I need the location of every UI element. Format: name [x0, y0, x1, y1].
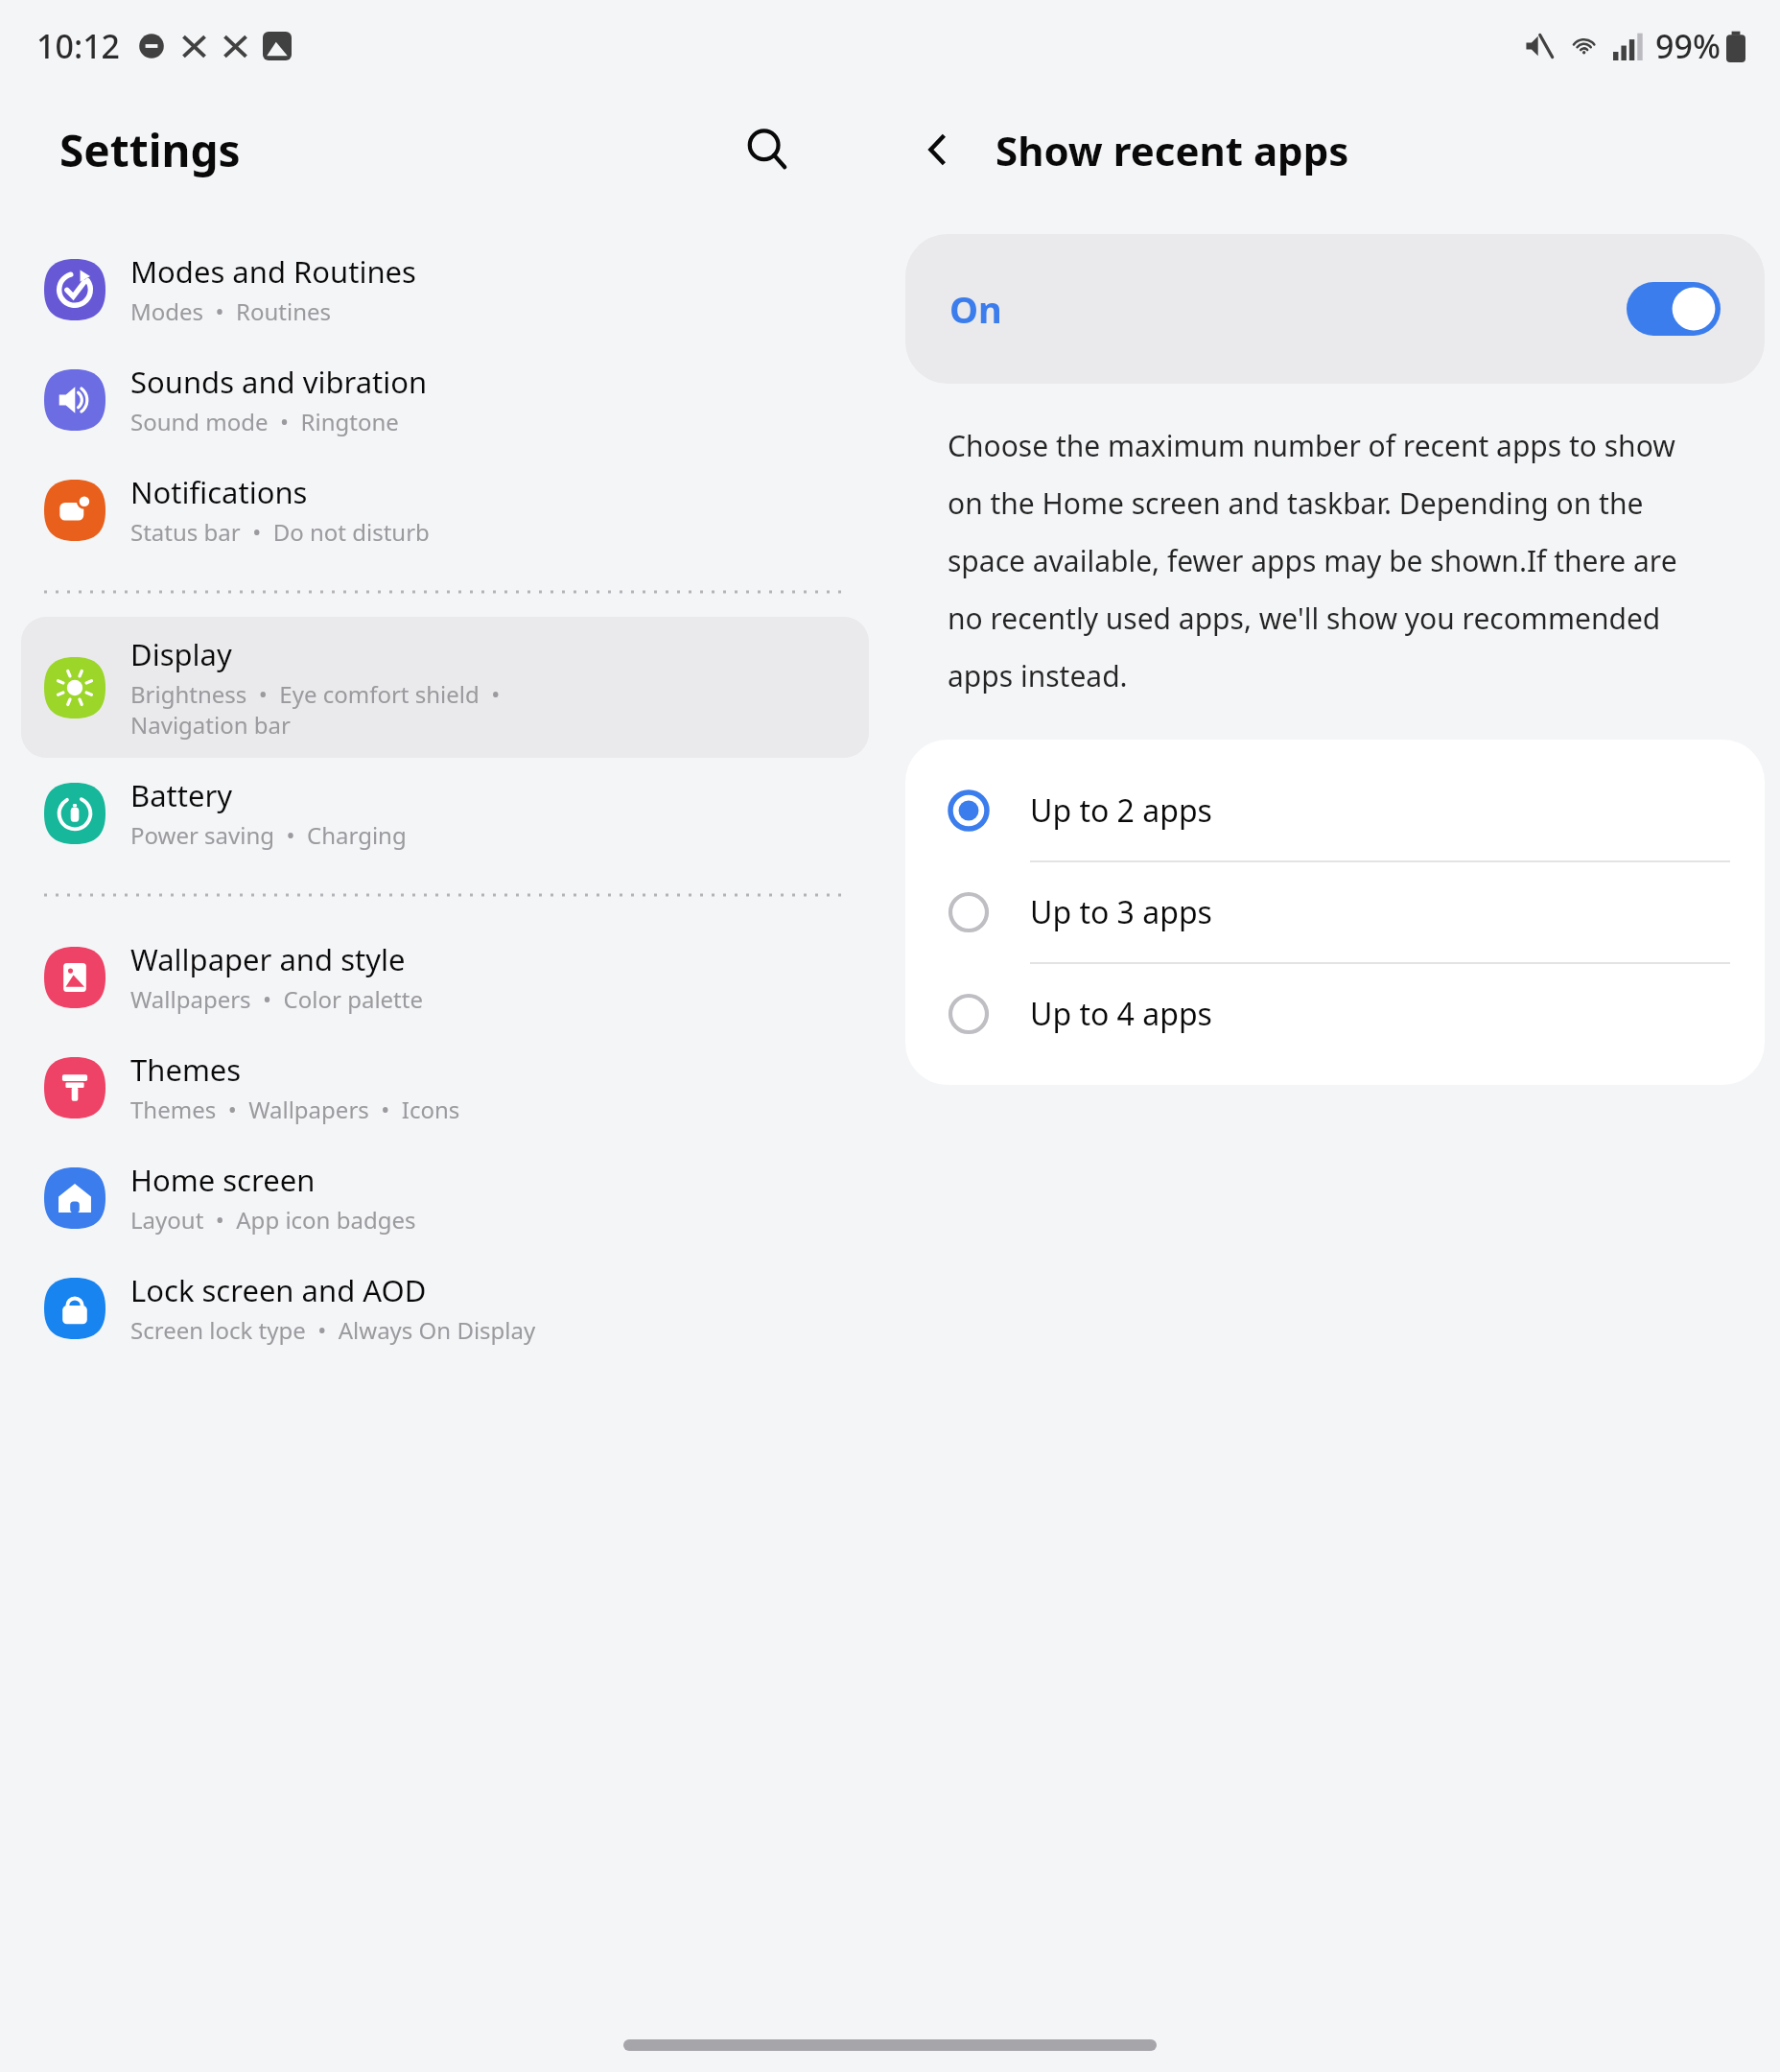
staticText: Themes	[130, 1049, 242, 1090]
staticText: Sound mode • Ringtone	[130, 406, 399, 437]
button[interactable]: Sounds and vibration	[21, 344, 869, 455]
staticText: Themes • Wallpapers • Icons	[130, 1094, 460, 1125]
button[interactable]: Back	[903, 115, 972, 184]
staticText: Layout • App icon badges	[130, 1204, 416, 1236]
staticText: Wallpaper and style	[130, 939, 406, 979]
button[interactable]: On	[905, 234, 1765, 384]
staticText: Show recent apps	[995, 123, 1349, 177]
button[interactable]: Battery	[21, 758, 869, 868]
button[interactable]: Display	[21, 617, 869, 758]
staticText: Status bar • Do not disturb	[130, 516, 430, 548]
staticText: Modes • Routines	[130, 295, 332, 327]
staticText: Choose the maximum number of recent apps…	[948, 426, 1705, 695]
staticText: Sounds and vibration	[130, 362, 428, 402]
button[interactable]: Themes	[21, 1032, 869, 1142]
button[interactable]: Up to 2 apps	[905, 761, 1765, 860]
button[interactable]: Up to 4 apps	[905, 964, 1765, 1064]
staticText: On	[949, 284, 1002, 334]
button[interactable]: Modes and Routines	[21, 234, 869, 344]
staticText: Wallpapers • Color palette	[130, 983, 423, 1015]
staticText: Screen lock type • Always On Display	[130, 1314, 536, 1346]
staticText: 10:12	[36, 24, 121, 68]
button[interactable]: Search	[733, 115, 802, 184]
staticText: Lock screen and AOD	[130, 1270, 427, 1310]
button[interactable]: Lock screen and AOD	[21, 1253, 869, 1363]
staticText: Home screen	[130, 1160, 316, 1200]
staticText: Modes and Routines	[130, 251, 416, 292]
staticText: Brightness • Eye comfort shield • Naviga…	[130, 678, 501, 741]
staticText: Up to 2 apps	[1030, 789, 1212, 832]
staticText: Notifications	[130, 472, 308, 512]
staticText: Power saving • Charging	[130, 819, 407, 851]
staticText: 99%	[1655, 24, 1721, 68]
button[interactable]: Home screen	[21, 1142, 869, 1253]
staticText: Settings	[59, 120, 241, 180]
button[interactable]: Up to 3 apps	[905, 862, 1765, 962]
staticText: Up to 4 apps	[1030, 993, 1212, 1035]
button[interactable]: Notifications	[21, 455, 869, 565]
staticText: Up to 3 apps	[1030, 891, 1212, 933]
staticText: Display	[130, 634, 232, 674]
button[interactable]: Wallpaper and style	[21, 922, 869, 1032]
staticText: Battery	[130, 775, 233, 815]
